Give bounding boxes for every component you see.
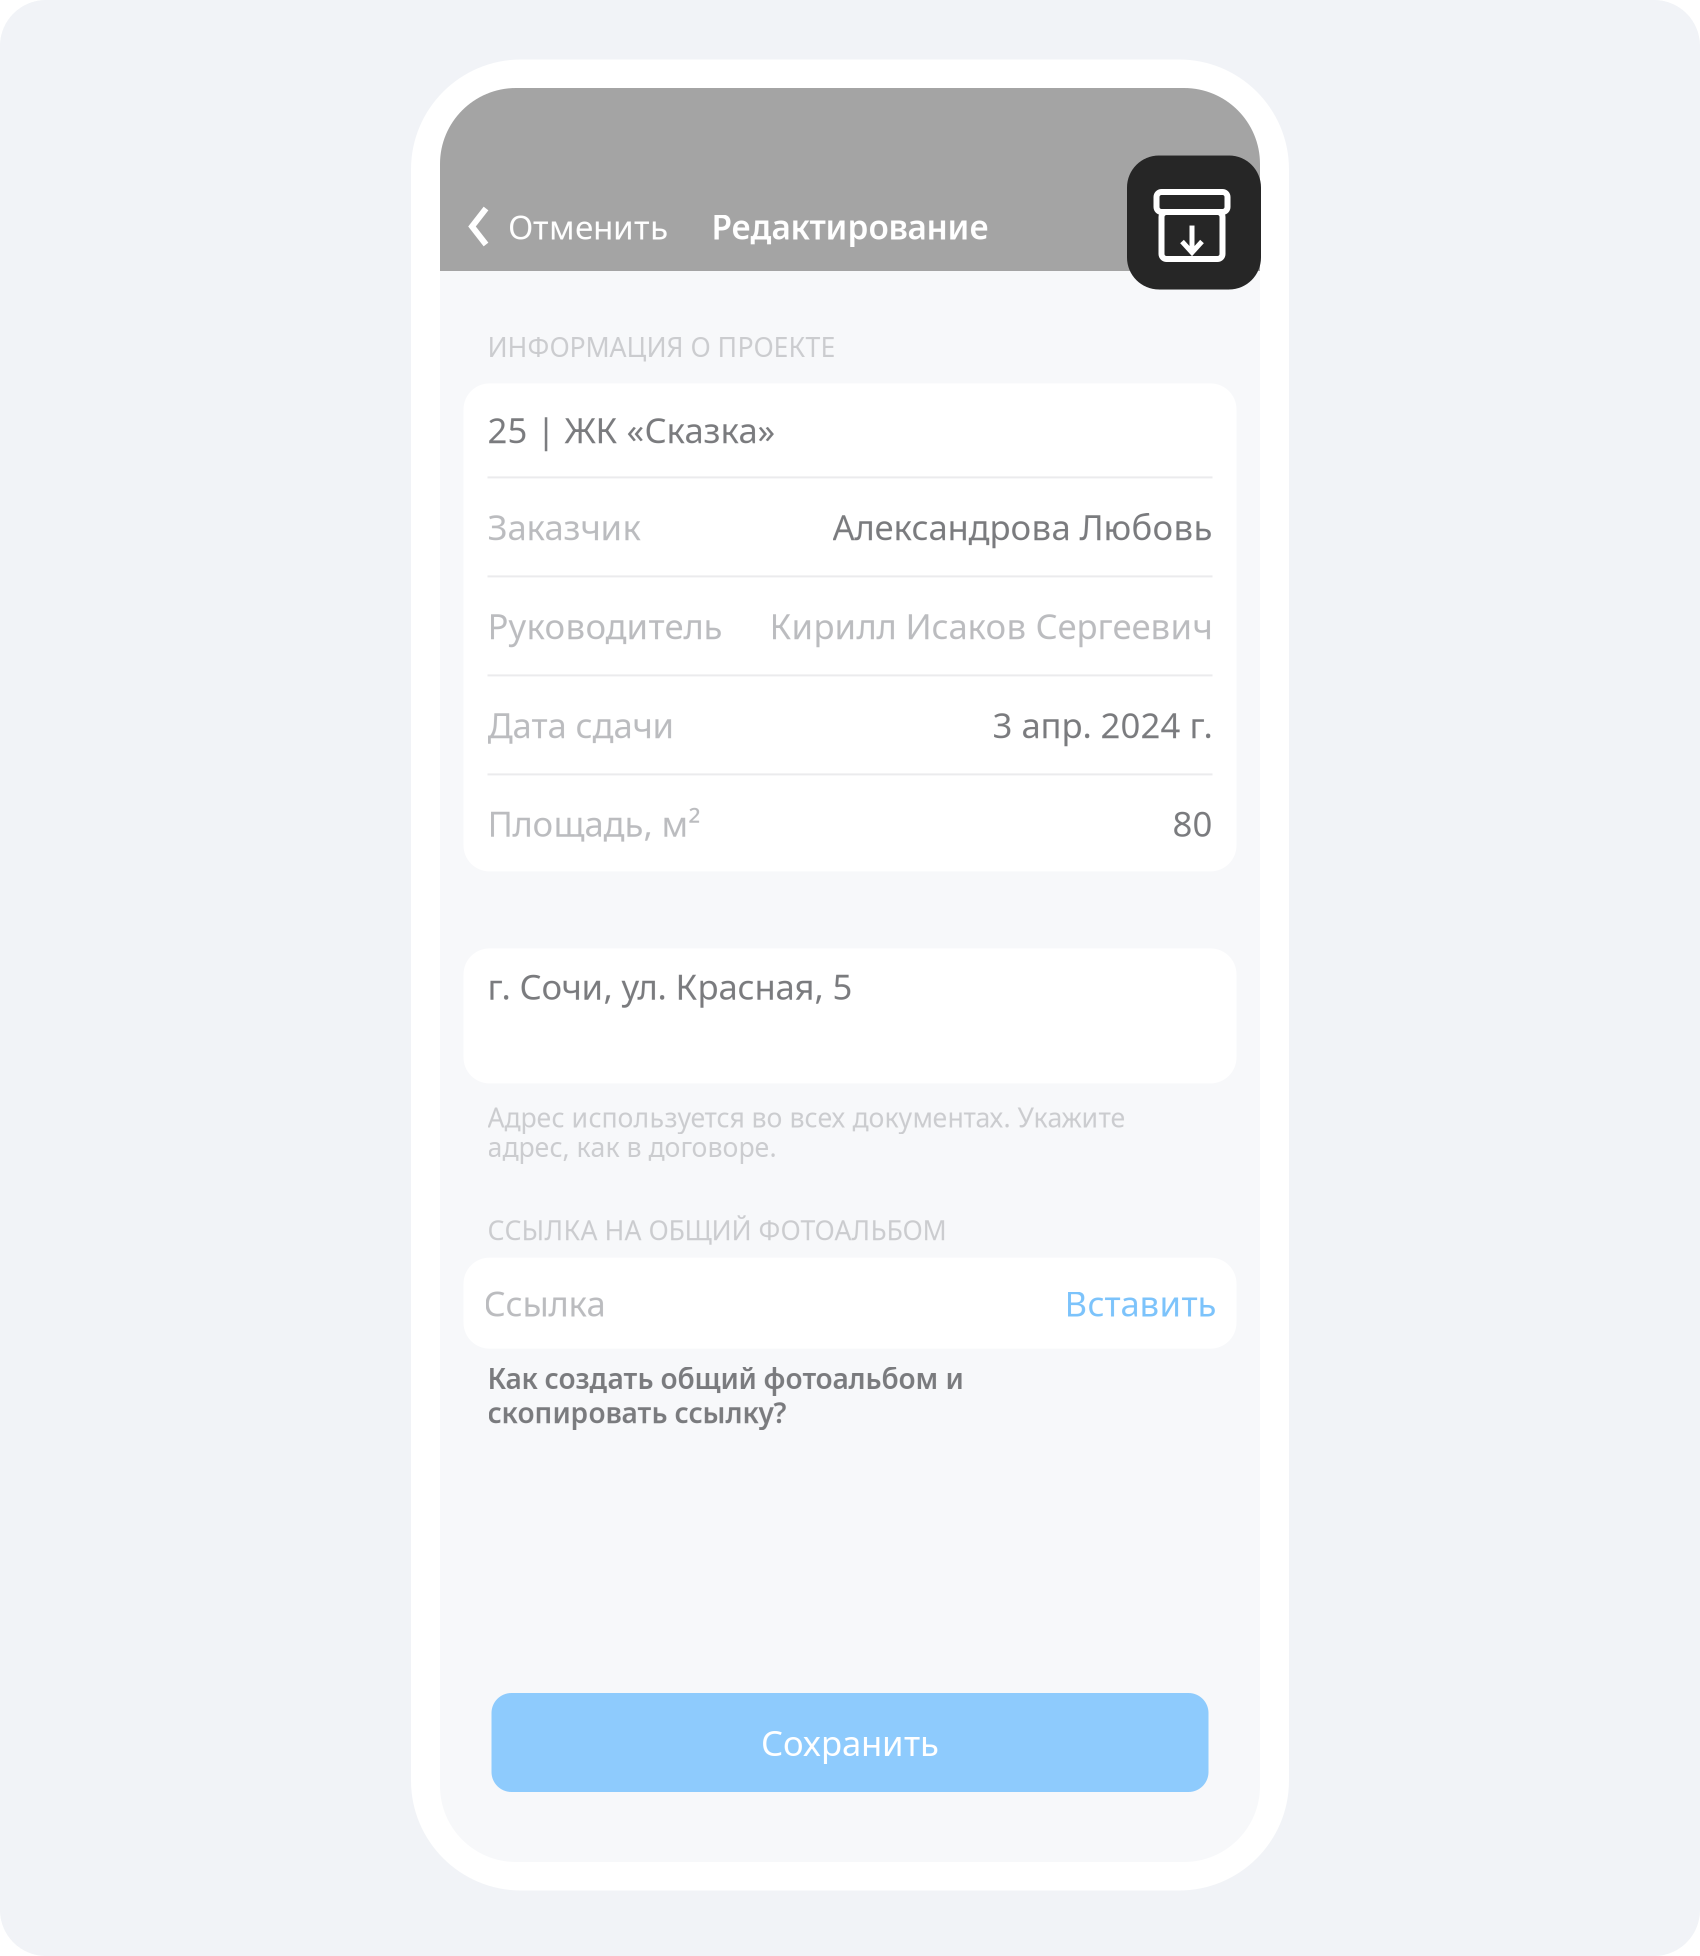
staticText: Отменить <box>508 204 668 249</box>
button[interactable]: Отменить <box>440 190 668 263</box>
staticText: 3 апр. 2024 г. <box>992 702 1212 748</box>
button[interactable]: Сохранить <box>491 1693 1208 1792</box>
staticText: 25 | ЖК «Сказка» <box>487 407 775 453</box>
staticText: ИНФОРМАЦИЯ О ПРОЕКТЕ <box>487 329 835 364</box>
button[interactable]: Площадь, м² <box>487 775 1212 871</box>
staticText: Как создать общий фотоальбом и <box>487 1360 963 1397</box>
staticText: Площадь, м² <box>487 800 700 846</box>
button[interactable]: Вставить <box>1036 1258 1216 1349</box>
staticText: Кирилл Исаков Сергеевич <box>769 603 1212 649</box>
staticText: Дата сдачи <box>487 702 674 748</box>
staticText: Руководитель <box>487 603 722 649</box>
staticText: Вставить <box>1064 1280 1216 1326</box>
staticText: Заказчик <box>487 504 640 550</box>
staticText: Сохранить <box>761 1719 939 1765</box>
staticText: Адрес используется во всех документах. У… <box>487 1099 1125 1135</box>
button[interactable]: Архивировать <box>1127 155 1261 289</box>
staticText: Ссылка <box>483 1280 605 1326</box>
staticText: Александрова Любовь <box>832 504 1212 550</box>
button[interactable]: Ссылка <box>483 1258 1028 1349</box>
button[interactable]: 25 | ЖК «Сказка» <box>487 383 1212 476</box>
staticText: 80 <box>1172 800 1212 846</box>
staticText: адрес, как в договоре. <box>487 1129 776 1164</box>
button[interactable]: Заказчик <box>487 478 1212 575</box>
button[interactable]: Руководитель <box>487 577 1212 674</box>
staticText: Редактирование <box>711 204 988 249</box>
button[interactable]: Как создать общий фотоальбом и <box>487 1360 1212 1431</box>
button[interactable]: г. Сочи, ул. Красная, 5 <box>463 948 1236 1083</box>
staticText: г. Сочи, ул. Красная, 5 <box>487 963 852 1009</box>
staticText: скопировать ссылку? <box>487 1394 786 1431</box>
staticText: ССЫЛКА НА ОБЩИЙ ФОТОАЛЬБОМ <box>487 1212 946 1248</box>
button[interactable]: Дата сдачи <box>487 676 1212 773</box>
